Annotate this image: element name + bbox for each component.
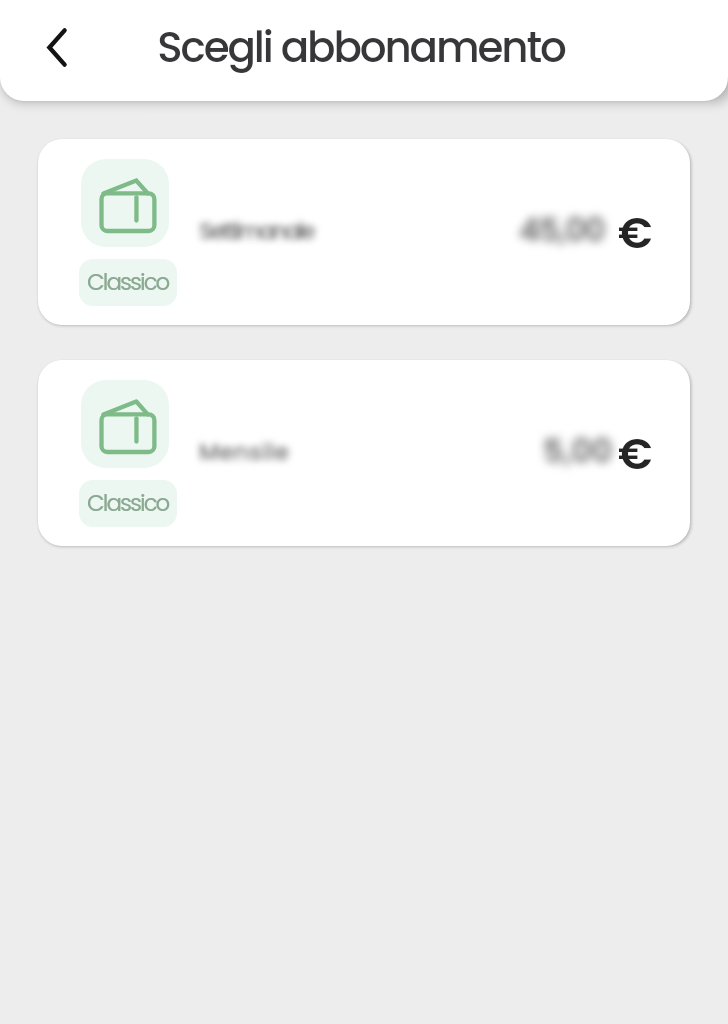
- staticText: 45,00: [519, 207, 605, 252]
- staticText: Classico: [87, 487, 169, 519]
- staticText: €: [618, 424, 653, 484]
- button[interactable]: Classico: [79, 259, 177, 306]
- staticText: Classico: [87, 266, 169, 298]
- button[interactable]: Classico: [38, 360, 690, 546]
- staticText: Mensile: [199, 436, 290, 468]
- button[interactable]: Classico: [79, 480, 177, 527]
- button[interactable]: Classico: [38, 139, 690, 325]
- staticText: Scegli abbonamento: [157, 18, 565, 77]
- button[interactable]: Back: [30, 20, 84, 74]
- staticText: Settimanale: [199, 215, 314, 247]
- staticText: 5,00: [543, 428, 613, 473]
- staticText: €: [618, 203, 653, 263]
